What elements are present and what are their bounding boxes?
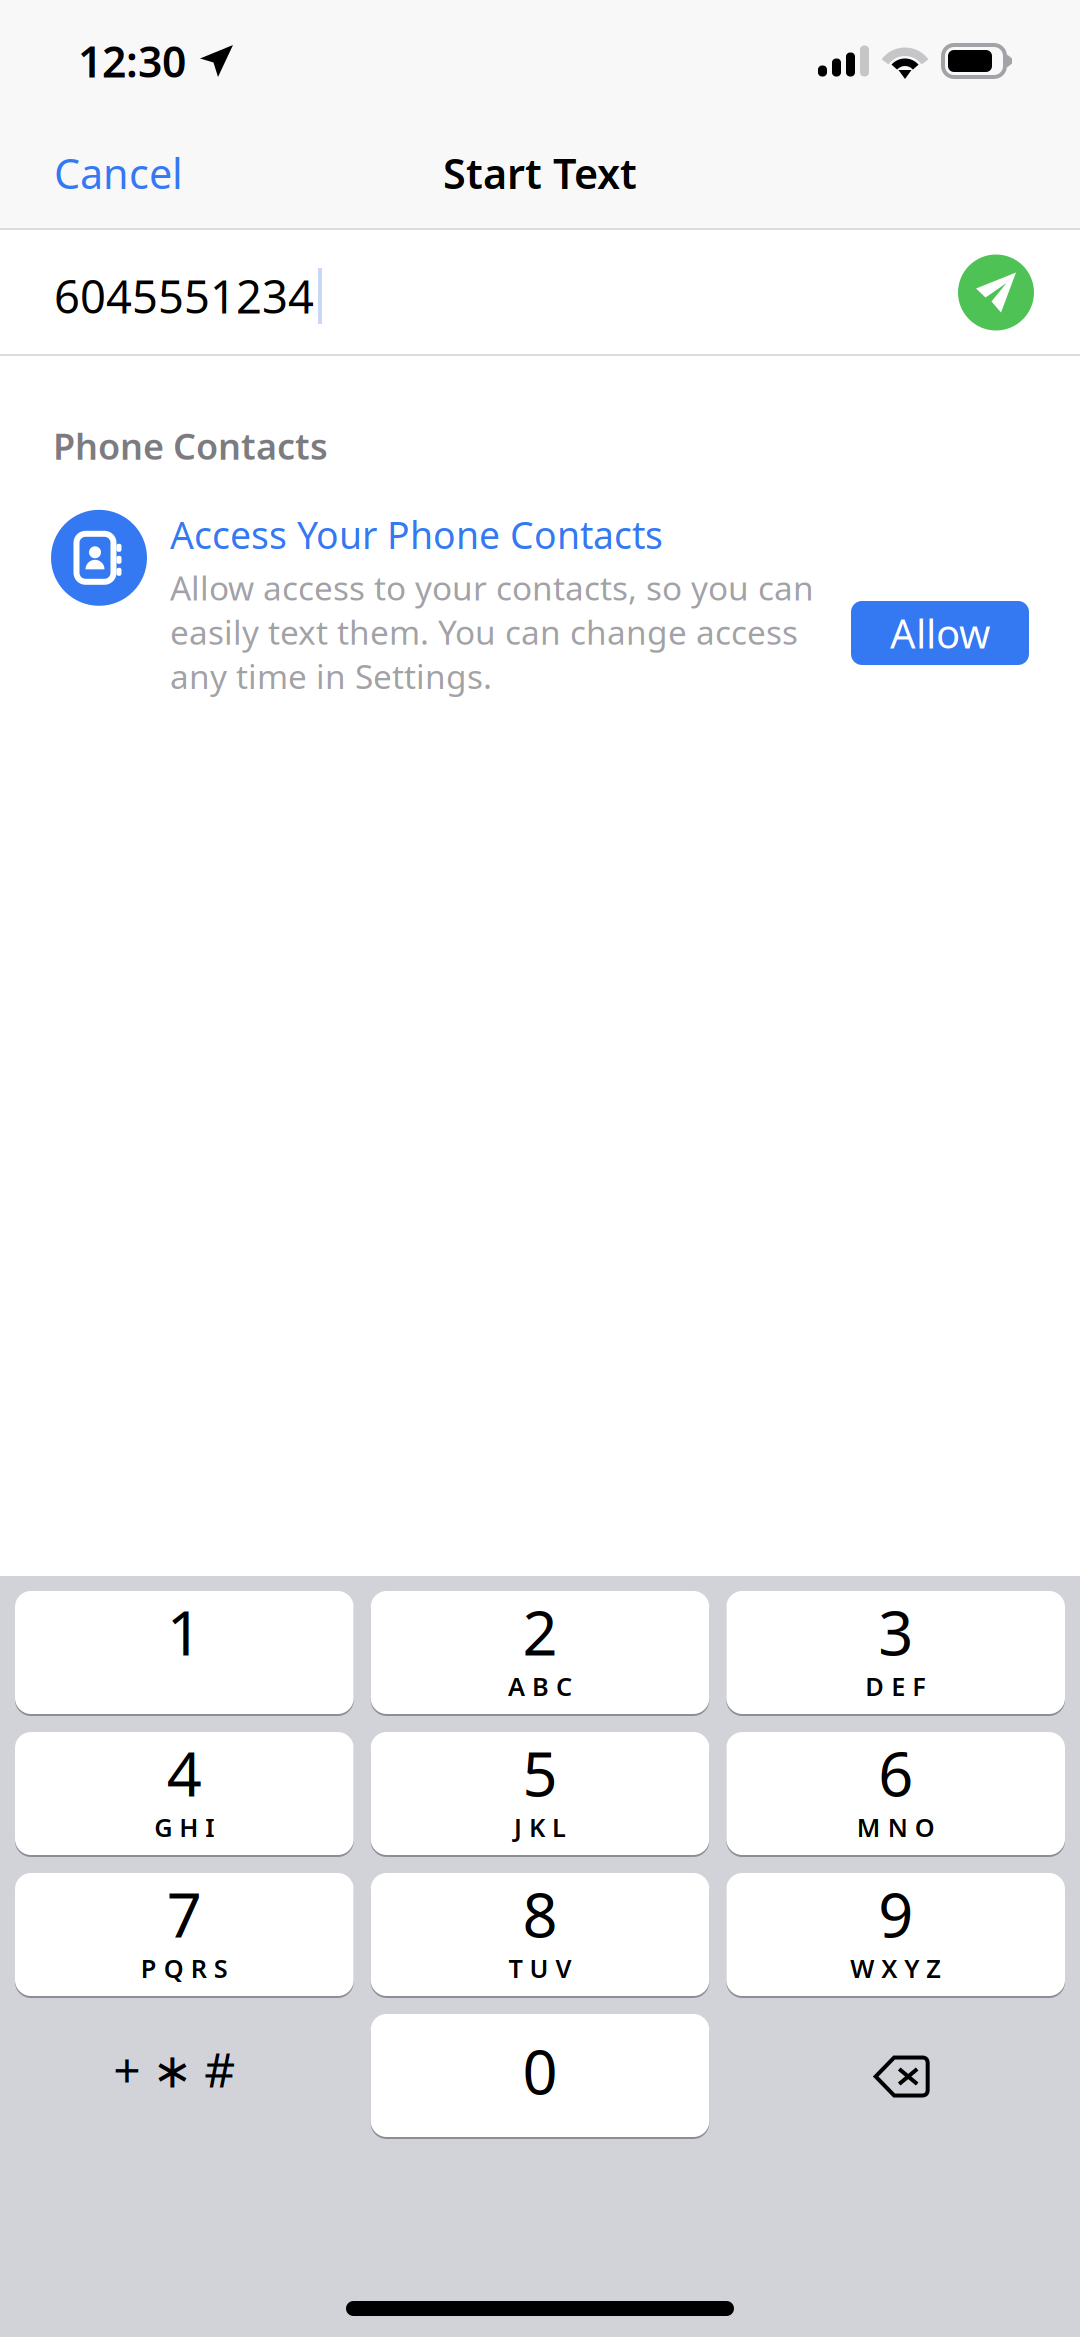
button[interactable]: Delete bbox=[726, 2014, 1065, 2139]
staticText: Start Text bbox=[443, 146, 637, 200]
staticText: Cancel bbox=[54, 146, 183, 200]
button[interactable]: 1 bbox=[15, 1591, 354, 1716]
staticText: 9 bbox=[878, 1873, 913, 1954]
button[interactable]: Send bbox=[958, 254, 1080, 337]
button[interactable]: Symbols bbox=[15, 2014, 354, 2139]
button[interactable]: Allow bbox=[851, 601, 1029, 665]
staticText: 4 bbox=[167, 1732, 202, 1813]
button[interactable]: 7 bbox=[15, 1873, 354, 1998]
staticText: Allow access to your contacts, so you ca… bbox=[170, 565, 814, 698]
staticText: 5 bbox=[522, 1732, 557, 1813]
staticText: P Q R S bbox=[141, 1951, 228, 1985]
staticText: 1 bbox=[167, 1591, 202, 1672]
staticText: 6 bbox=[878, 1732, 913, 1813]
staticText: 8 bbox=[522, 1873, 557, 1954]
staticText: A B C bbox=[508, 1669, 572, 1703]
button[interactable]: Cancel bbox=[0, 116, 209, 230]
staticText: W X Y Z bbox=[850, 1951, 941, 1985]
staticText: 6045551234 bbox=[54, 266, 314, 326]
staticText: D E F bbox=[865, 1669, 926, 1703]
staticText: Phone Contacts bbox=[53, 422, 328, 470]
staticText: 7 bbox=[167, 1873, 202, 1954]
staticText: 2 bbox=[522, 1591, 557, 1672]
button[interactable]: 6 bbox=[726, 1732, 1065, 1857]
staticText: 0 bbox=[522, 2030, 557, 2111]
button[interactable]: 5 bbox=[371, 1732, 709, 1857]
staticText: Access Your Phone Contacts bbox=[170, 510, 663, 559]
button[interactable]: 9 bbox=[726, 1873, 1065, 1998]
staticText: 12:30 bbox=[78, 33, 186, 89]
staticText: T U V bbox=[508, 1951, 571, 1985]
button[interactable]: 2 bbox=[371, 1591, 709, 1716]
button[interactable]: 3 bbox=[726, 1591, 1065, 1716]
button[interactable]: 0 bbox=[371, 2014, 709, 2139]
staticText: + ∗ # bbox=[113, 2037, 235, 2101]
staticText: G H I bbox=[154, 1810, 214, 1844]
button[interactable]: 4 bbox=[15, 1732, 354, 1857]
button[interactable]: 8 bbox=[371, 1873, 709, 1998]
staticText: Allow bbox=[890, 606, 990, 659]
staticText: 3 bbox=[878, 1591, 913, 1672]
staticText: J K L bbox=[514, 1810, 566, 1844]
staticText: M N O bbox=[857, 1810, 935, 1844]
